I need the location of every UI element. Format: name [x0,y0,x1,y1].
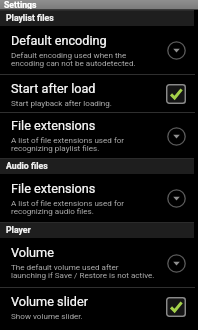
staticText: Audio files [6,161,48,171]
staticText: Player [6,225,31,235]
button[interactable]: Volume [0,238,198,287]
staticText: Default encoding [11,33,107,48]
button[interactable]: Enabled, checked [163,294,189,320]
staticText: Default encoding used when the encoding … [11,50,136,68]
staticText: A list of file extensions used for recog… [11,198,125,216]
staticText: The default volume used after launching … [11,262,155,280]
staticText: Settings [4,0,37,10]
staticText: Volume [11,245,54,260]
button[interactable]: Default encoding [0,26,198,74]
button[interactable]: Open options list [163,123,189,149]
button[interactable]: File extensions [0,113,198,158]
staticText: Start after load [11,81,96,96]
staticText: A list of file extensions used for recog… [11,135,125,153]
button[interactable]: Settings [0,0,198,10]
button[interactable]: Volume slider [0,288,198,326]
staticText: Show volume slider. [11,311,83,320]
button[interactable]: Open options list [163,185,189,211]
staticText: Start playback after loading. [11,98,113,107]
staticText: Volume slider [11,294,89,309]
button[interactable]: Enabled, checked [163,81,189,107]
staticText: File extensions [11,118,96,133]
button[interactable]: File extensions [0,174,198,222]
staticText: File extensions [11,181,96,196]
staticText: Playlist files [6,13,54,23]
button[interactable]: Open options list [163,250,189,276]
button[interactable]: Open options list [163,37,189,63]
button[interactable]: Start after load [0,75,198,112]
